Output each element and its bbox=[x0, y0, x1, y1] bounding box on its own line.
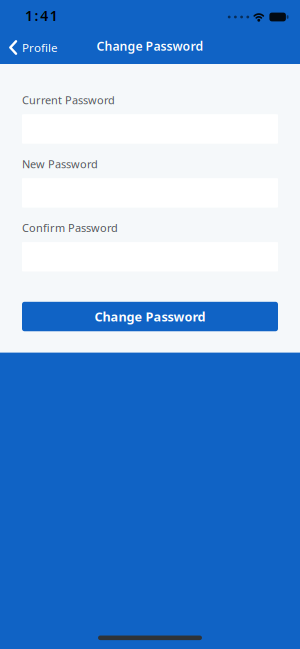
staticText: 1 bbox=[50, 6, 58, 25]
button[interactable]: Back to Profile bbox=[0, 40, 58, 55]
button[interactable]: Change Password bbox=[22, 302, 278, 331]
staticText: Confirm Password bbox=[22, 220, 118, 235]
staticText: Change Password bbox=[94, 308, 205, 325]
staticText: 1 bbox=[25, 6, 33, 25]
staticText: New Password bbox=[22, 156, 98, 171]
staticText: 4 bbox=[40, 6, 48, 25]
staticText: Profile bbox=[22, 40, 58, 55]
staticText: : bbox=[35, 6, 39, 25]
staticText: Current Password bbox=[22, 93, 115, 107]
staticText: Change Password bbox=[96, 38, 203, 54]
